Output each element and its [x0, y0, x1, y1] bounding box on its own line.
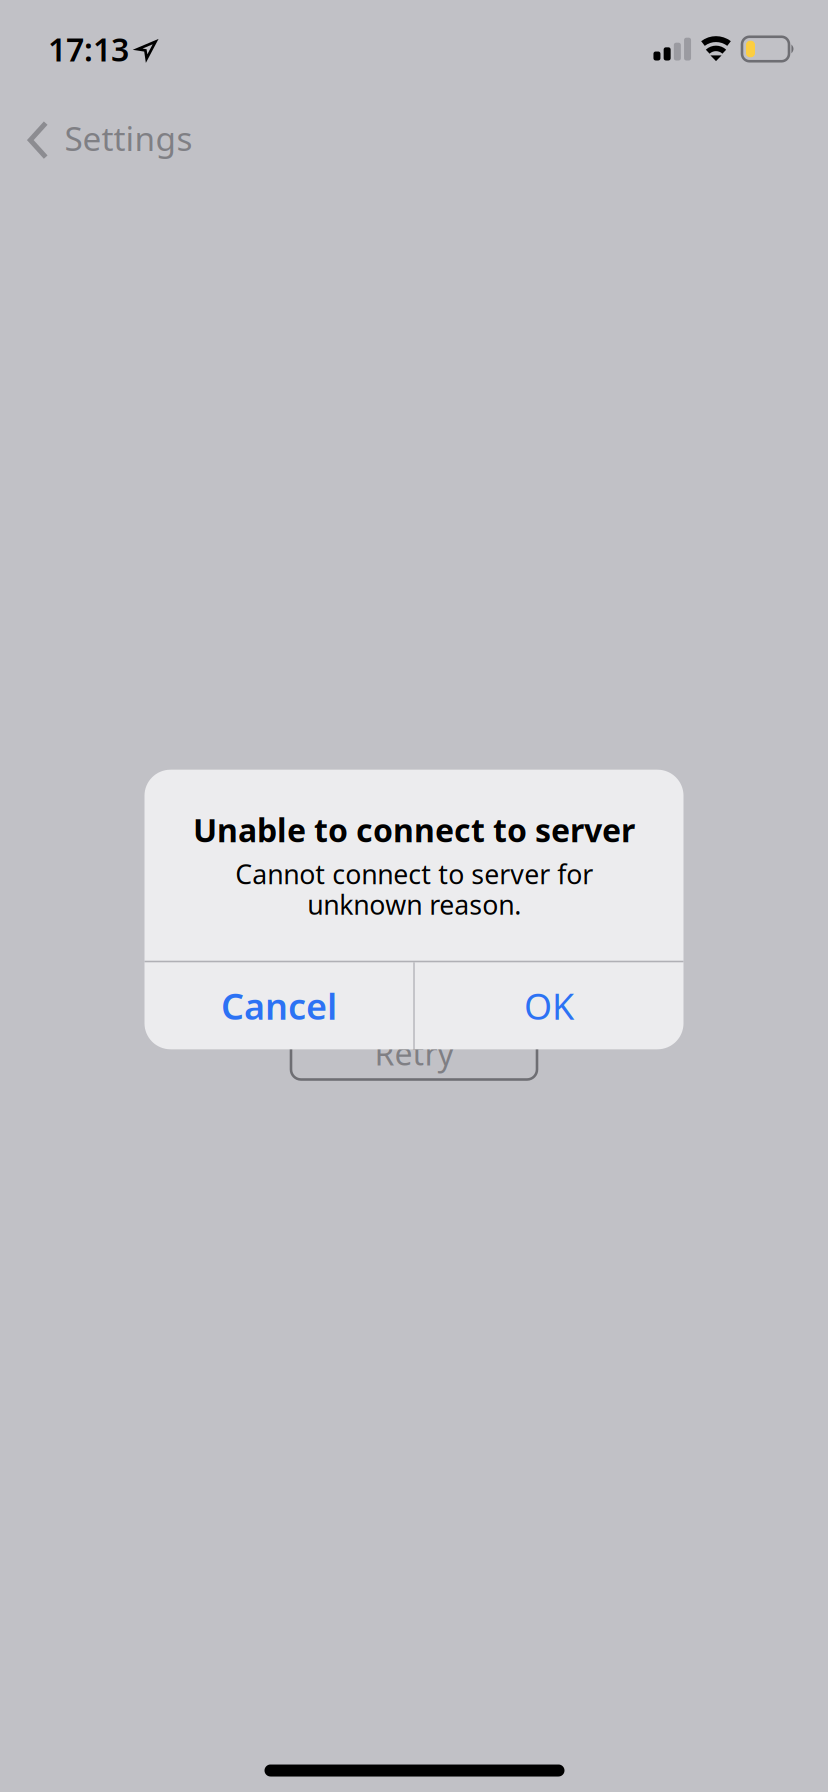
staticText: Unable to connect to server	[193, 809, 635, 851]
staticText: Retry	[374, 1032, 453, 1074]
staticText: Cancel	[221, 982, 337, 1030]
staticText: 17:13	[48, 28, 129, 70]
button[interactable]: Settings	[13, 102, 206, 174]
button[interactable]: Retry	[291, 1026, 537, 1079]
staticText: Settings	[64, 116, 192, 160]
button[interactable]: Cancel	[144, 962, 413, 1049]
button[interactable]: OK	[415, 962, 684, 1049]
staticText: Cannot connect to server for unknown rea…	[235, 856, 593, 922]
staticText: OK	[524, 982, 574, 1030]
